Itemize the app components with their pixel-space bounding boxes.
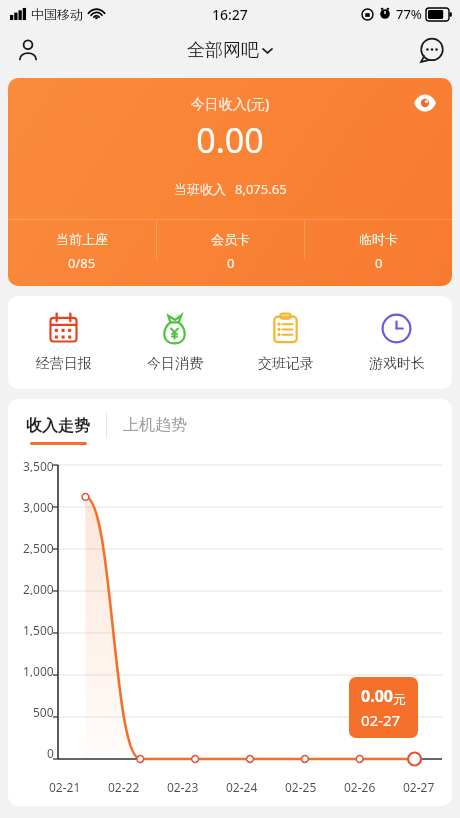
button[interactable]: 全部网吧 <box>187 39 274 62</box>
staticText: 元 <box>393 691 406 707</box>
button[interactable]: Profile <box>8 30 48 70</box>
staticText: 临时卡 <box>359 231 398 247</box>
staticText: 0/85 <box>68 254 96 272</box>
staticText: 500 <box>33 704 54 718</box>
button[interactable]: 临时卡 <box>305 220 452 282</box>
staticText: 02-27 <box>361 710 401 730</box>
staticText: 1,000 <box>23 663 54 677</box>
button[interactable]: Toggle visibility <box>408 86 442 120</box>
staticText: 今日收入(元) <box>8 94 452 113</box>
button[interactable]: 会员卡 <box>157 220 304 282</box>
staticText: 02-23 <box>167 779 199 795</box>
staticText: 0 <box>47 745 54 759</box>
staticText: 0.00 <box>361 685 393 707</box>
staticText: 2,000 <box>23 581 54 595</box>
button[interactable]: Messages <box>412 30 452 70</box>
staticText: 当前上座 <box>56 231 108 247</box>
staticText: 8,075.65 <box>235 180 287 198</box>
staticText: 0 <box>375 254 383 272</box>
staticText: 上机趋势 <box>123 415 187 435</box>
staticText: 02-27 <box>403 779 435 795</box>
button[interactable]: 游戏时长 <box>341 296 452 389</box>
staticText: 0 <box>227 254 235 272</box>
staticText: 游戏时长 <box>369 355 425 373</box>
staticText: 02-26 <box>344 779 376 795</box>
staticText: 16:27 <box>212 5 248 24</box>
staticText: 02-24 <box>226 779 258 795</box>
button[interactable]: 今日消费 <box>119 296 230 389</box>
button[interactable]: 今日收入(元) <box>8 78 452 286</box>
staticText: 02-21 <box>49 779 81 795</box>
staticText: 当班收入 <box>174 181 226 197</box>
staticText: 3,500 <box>23 458 54 472</box>
button[interactable]: 经营日报 <box>8 296 119 389</box>
button[interactable]: 收入走势 <box>26 399 90 451</box>
button[interactable]: 当前上座 <box>8 220 156 282</box>
button[interactable]: 交班记录 <box>230 296 341 389</box>
button[interactable]: 上机趋势 <box>123 399 187 451</box>
staticText: 收入走势 <box>26 416 90 436</box>
staticText: 1,500 <box>23 622 54 636</box>
staticText: 02-22 <box>108 779 140 795</box>
staticText: 0.00 <box>8 117 452 163</box>
staticText: 77% <box>396 5 422 23</box>
staticText: 2,500 <box>23 540 54 554</box>
staticText: 今日消费 <box>147 355 203 373</box>
staticText: 会员卡 <box>211 231 250 247</box>
staticText: 全部网吧 <box>187 39 259 62</box>
staticText: 经营日报 <box>36 355 92 373</box>
staticText: 中国移动 <box>31 6 83 22</box>
staticText: 3,000 <box>23 499 54 513</box>
staticText: 交班记录 <box>258 355 314 373</box>
staticText: 02-25 <box>285 779 317 795</box>
